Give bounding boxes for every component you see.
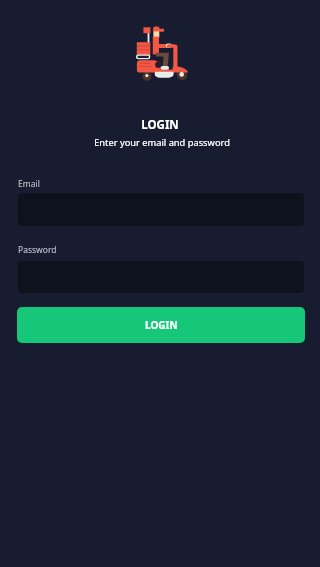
- staticText: LOGIN: [0, 117, 320, 133]
- staticText: Enter your email and password: [2, 136, 320, 149]
- staticText: LOGIN: [145, 318, 178, 332]
- staticText: Email: [18, 178, 40, 190]
- staticText: Password: [18, 244, 57, 256]
- button[interactable]: LOGIN: [17, 307, 305, 343]
